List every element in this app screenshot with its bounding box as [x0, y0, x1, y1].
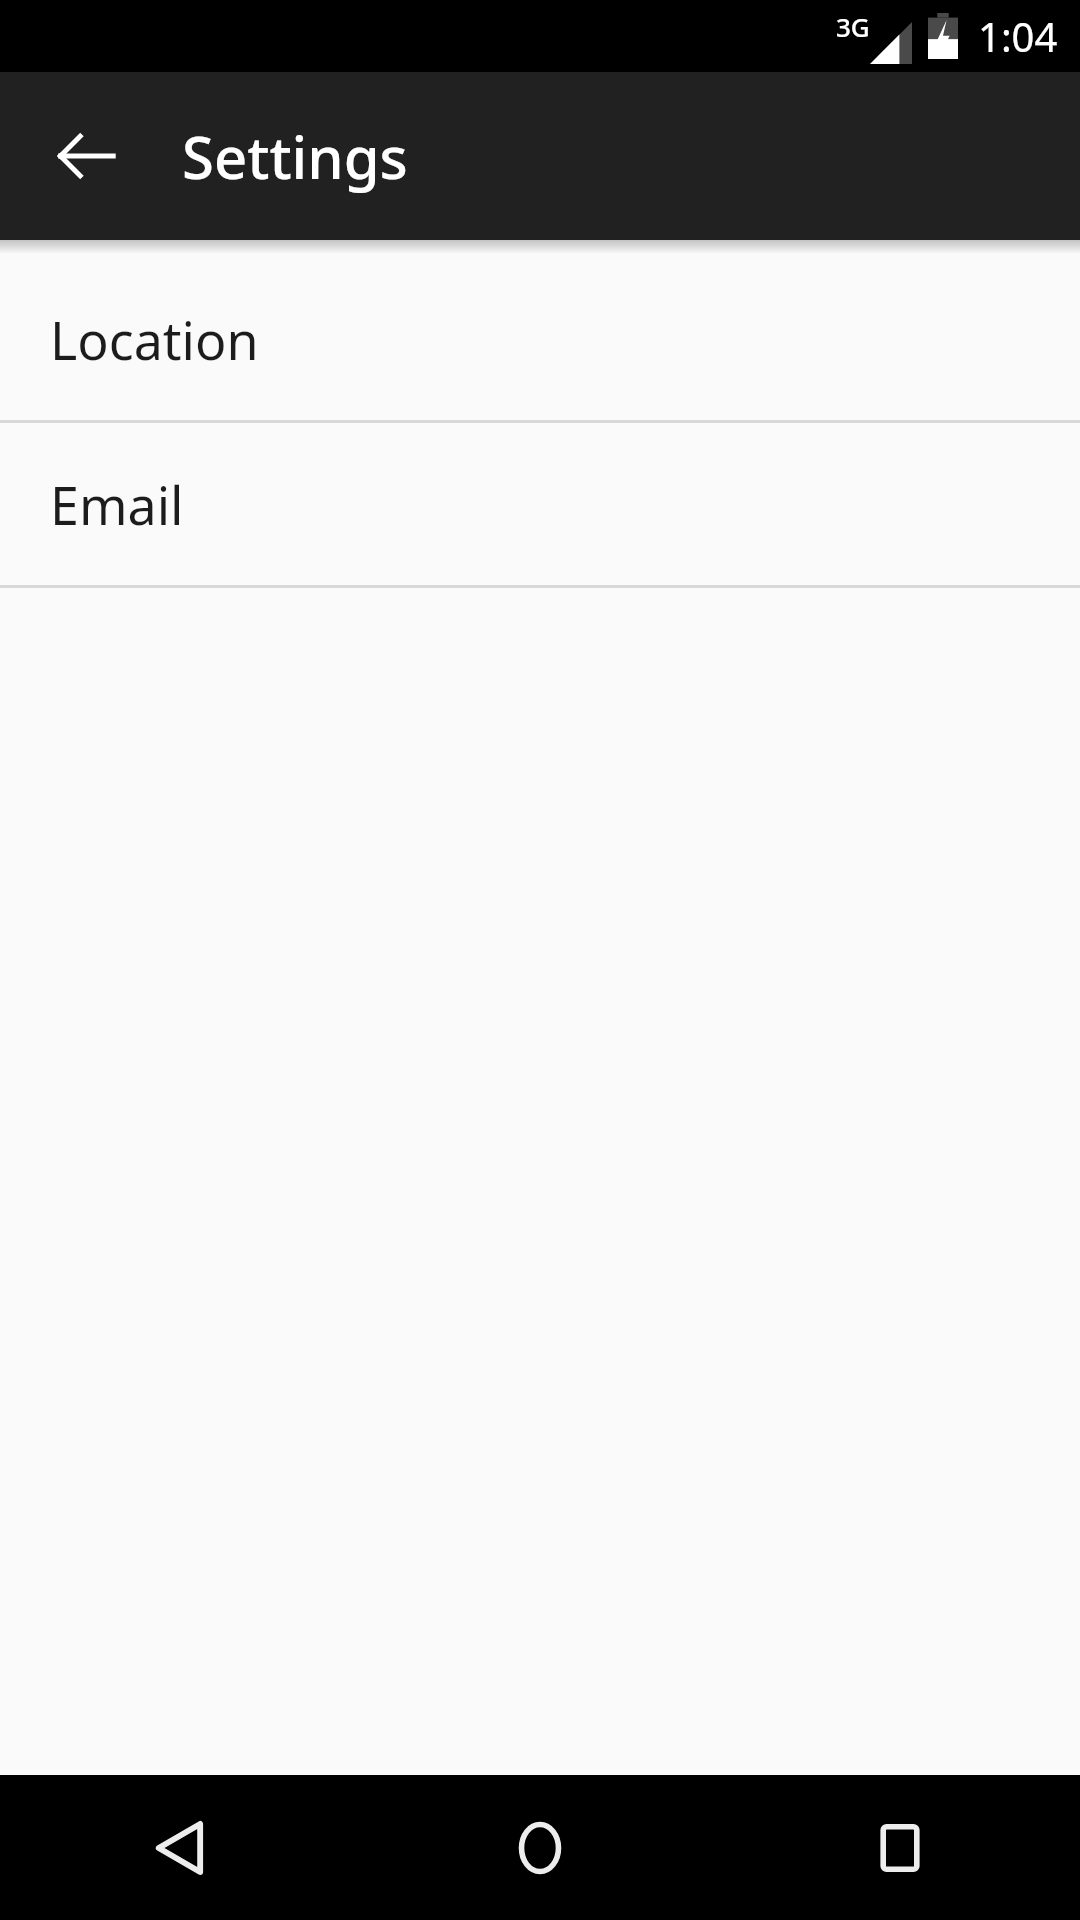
button[interactable]: Back — [38, 108, 134, 204]
button[interactable]: Back — [0, 1775, 360, 1920]
staticText: Email — [50, 469, 184, 540]
button[interactable]: Location — [0, 258, 1080, 420]
button[interactable]: Home — [360, 1775, 720, 1920]
staticText: Location — [50, 304, 259, 375]
staticText: 1:04 — [978, 9, 1058, 63]
staticText: Settings — [182, 117, 408, 196]
staticText: 3G — [836, 9, 870, 44]
button[interactable]: Recents — [720, 1775, 1080, 1920]
button[interactable]: Email — [0, 423, 1080, 585]
